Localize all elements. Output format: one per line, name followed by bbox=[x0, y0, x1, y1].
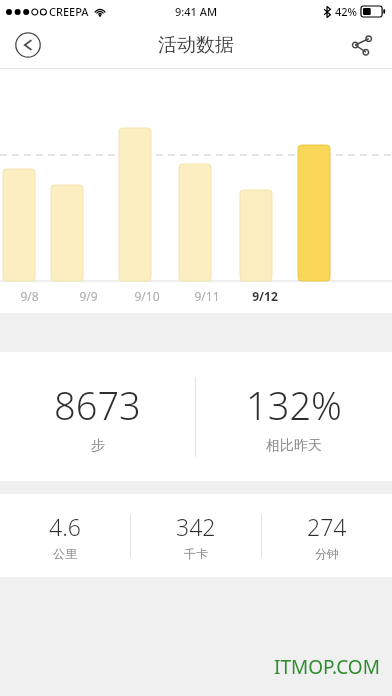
staticText: 公里 bbox=[53, 546, 77, 561]
staticText: 9/12 bbox=[252, 288, 278, 304]
staticText: 274 bbox=[307, 511, 347, 542]
button[interactable]: 4.6 bbox=[0, 494, 130, 577]
staticText: ITMOP.COM bbox=[274, 654, 380, 680]
button[interactable]: Share bbox=[342, 25, 382, 65]
staticText: 活动数据 bbox=[158, 33, 234, 57]
staticText: 132% bbox=[246, 379, 342, 431]
button[interactable]: 274 bbox=[262, 494, 392, 577]
staticText: 9:41 AM bbox=[175, 4, 218, 19]
staticText: 4.6 bbox=[49, 511, 81, 542]
staticText: 9/8 bbox=[20, 288, 39, 304]
button[interactable]: Back bbox=[8, 25, 48, 65]
staticText: 9/11 bbox=[194, 288, 220, 304]
staticText: 9/9 bbox=[79, 288, 98, 304]
staticText: CREEPA bbox=[49, 4, 89, 19]
button[interactable]: 342 bbox=[131, 494, 261, 577]
staticText: 9/10 bbox=[134, 288, 160, 304]
staticText: 分钟 bbox=[315, 546, 339, 561]
staticText: 千卡 bbox=[184, 546, 208, 561]
staticText: 步 bbox=[91, 437, 105, 455]
button[interactable]: 132% bbox=[196, 352, 392, 481]
staticText: 相比昨天 bbox=[266, 437, 322, 455]
staticText: 42% bbox=[335, 4, 357, 19]
staticText: 8673 bbox=[54, 379, 141, 431]
staticText: 342 bbox=[176, 511, 216, 542]
button[interactable]: 8673 bbox=[0, 352, 195, 481]
